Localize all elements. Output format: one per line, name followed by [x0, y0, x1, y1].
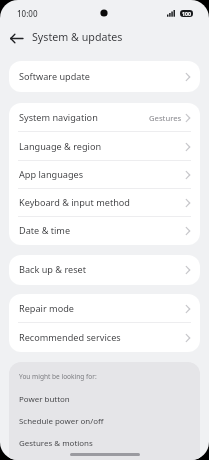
staticText: Gestures — [149, 113, 182, 123]
staticText: 10:00 — [17, 8, 38, 19]
staticText: Gestures & motions — [19, 438, 93, 449]
button[interactable]: Recommended services — [9, 323, 200, 352]
staticText: Software update — [19, 70, 90, 82]
staticText: Repair mode — [19, 302, 74, 314]
staticText: Schedule power on/off — [19, 416, 104, 427]
staticText: Recommended services — [19, 331, 121, 343]
button[interactable]: Software update — [9, 61, 200, 92]
staticText: System navigation — [19, 111, 98, 123]
staticText: Language & region — [19, 140, 102, 152]
staticText: App languages — [19, 168, 84, 180]
button[interactable]: App languages — [9, 161, 200, 189]
button[interactable]: Date & time — [9, 217, 200, 245]
button[interactable]: Gestures & motions — [9, 433, 200, 455]
button[interactable]: Back — [2, 24, 30, 52]
staticText: Back up & reset — [19, 263, 87, 275]
button[interactable]: Power button — [9, 389, 200, 411]
button[interactable]: Repair mode — [9, 294, 200, 323]
button[interactable]: Schedule power on/off — [9, 411, 200, 433]
button[interactable]: Keyboard & input method — [9, 189, 200, 217]
staticText: 100 — [182, 10, 191, 17]
button[interactable]: Back up & reset — [9, 255, 200, 285]
staticText: You might be looking for: — [19, 372, 97, 381]
staticText: Power button — [19, 394, 70, 405]
staticText: System & updates — [32, 30, 123, 45]
staticText: Date & time — [19, 224, 71, 236]
button[interactable]: System navigation — [9, 103, 200, 132]
button[interactable]: Language & region — [9, 132, 200, 161]
staticText: Keyboard & input method — [19, 196, 130, 208]
